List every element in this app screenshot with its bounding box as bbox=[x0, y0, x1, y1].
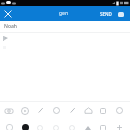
button[interactable]: SEND bbox=[98, 6, 114, 21]
staticText: gen bbox=[59, 10, 69, 17]
button[interactable]: Gif bbox=[33, 122, 47, 130]
button[interactable]: Gallery bbox=[49, 105, 63, 116]
button[interactable]: Video bbox=[18, 105, 32, 116]
button[interactable]: Emoji face bbox=[18, 122, 32, 130]
button[interactable]: Close bbox=[0, 6, 15, 21]
button[interactable]: Contact bbox=[96, 105, 110, 116]
button[interactable]: Location bbox=[81, 105, 95, 116]
button[interactable]: gen bbox=[59, 6, 69, 21]
button[interactable]: Emoji bbox=[112, 105, 126, 116]
button[interactable]: More bbox=[49, 122, 63, 130]
button[interactable]: Attach bbox=[65, 105, 79, 116]
button[interactable]: Back bbox=[65, 122, 79, 130]
button[interactable]: Attach file bbox=[33, 105, 47, 116]
staticText: Noah bbox=[4, 23, 17, 30]
button[interactable]: Add bbox=[112, 122, 126, 130]
button[interactable]: Recents bbox=[96, 122, 110, 130]
button[interactable]: More options bbox=[114, 7, 128, 21]
button[interactable]: Camera bbox=[2, 105, 16, 116]
button[interactable]: Stickers bbox=[2, 122, 16, 130]
button[interactable]: Noah bbox=[4, 22, 130, 30]
staticText: SEND bbox=[100, 11, 112, 17]
button[interactable]: Home bbox=[81, 122, 95, 130]
